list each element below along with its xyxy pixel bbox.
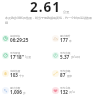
staticText: 平均心率	[60, 86, 71, 89]
button[interactable]: 平均心率	[50, 86, 100, 95]
button[interactable]: 累计爬升	[50, 34, 100, 43]
staticText: 累计步数	[10, 86, 21, 89]
other: 平均步幅	[52, 70, 59, 77]
staticText: 次/分	[69, 90, 76, 94]
staticText: 平均步幅	[60, 69, 71, 72]
staticText: 步	[23, 91, 26, 94]
other: 运动时长	[2, 35, 9, 42]
button[interactable]: 平均配速	[0, 51, 50, 60]
staticText: 公里	[63, 10, 70, 14]
staticText: 运动时长	[10, 34, 21, 37]
staticText: 103	[10, 72, 18, 78]
staticText: 5.37	[60, 54, 70, 60]
staticText: 米	[69, 39, 72, 42]
staticText: 平均配速	[10, 51, 21, 54]
staticText: 1,006	[10, 89, 22, 95]
staticText: 累计爬升	[60, 34, 71, 37]
staticText: 132	[60, 89, 68, 95]
staticText: 17'18"	[10, 54, 24, 60]
staticText: 06:29:25	[10, 37, 29, 43]
staticText: 本次跑步消耗的热量，相当于慢跑减脂训练，约一小时的运动效果 哦	[5, 16, 92, 25]
other: 平均配速	[2, 52, 9, 59]
other: 平均心率	[52, 87, 59, 94]
staticText: /公里	[25, 55, 32, 59]
staticText: 步/分钟	[71, 55, 80, 59]
button[interactable]: 运动时长	[0, 34, 50, 43]
button[interactable]: 平均步频	[50, 51, 100, 60]
other: 累计爬升	[52, 35, 59, 42]
button[interactable]: 消耗热量	[0, 69, 50, 78]
staticText: 2.61	[30, 0, 61, 16]
staticText: 87	[60, 72, 66, 78]
other: 消耗热量	[2, 70, 9, 77]
staticText: 千卡	[19, 74, 25, 77]
staticText: 平均步频	[60, 51, 71, 54]
button[interactable]: 平均步幅	[50, 69, 100, 78]
staticText: 厘米	[67, 74, 73, 77]
other: 累计步数	[2, 87, 9, 94]
staticText: 177	[60, 37, 68, 43]
staticText: 消耗热量	[10, 69, 21, 72]
other: 平均步频	[52, 52, 59, 59]
button[interactable]: 累计步数	[0, 86, 50, 95]
